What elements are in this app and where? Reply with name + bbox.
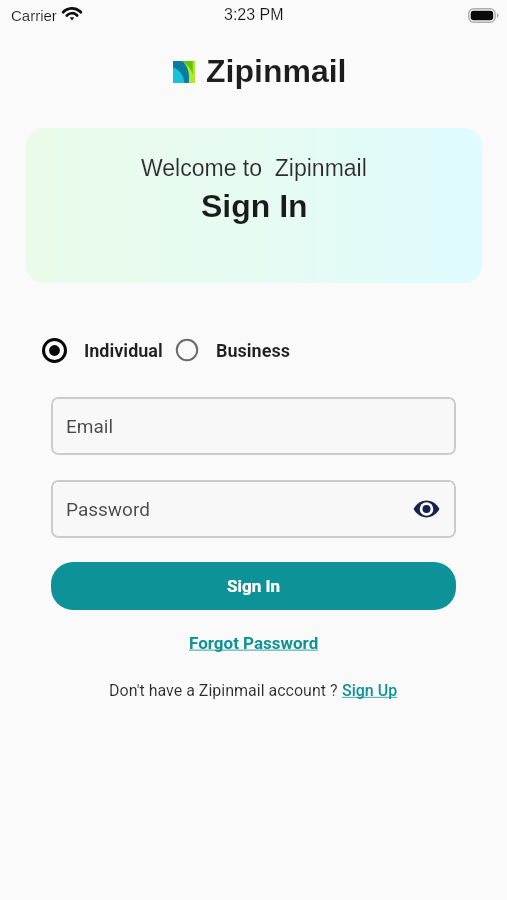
button[interactable]: Individual bbox=[41, 337, 163, 364]
button[interactable]: Sign In bbox=[51, 562, 456, 610]
button[interactable]: Email bbox=[51, 397, 456, 455]
staticText: Email bbox=[66, 415, 114, 437]
staticText: Welcome to Zipinmail bbox=[141, 155, 367, 181]
button[interactable]: Forgot Password bbox=[183, 630, 325, 656]
staticText: Carrier bbox=[11, 7, 57, 24]
staticText: 3:23 PM bbox=[224, 6, 284, 24]
staticText: Password bbox=[66, 498, 150, 520]
button[interactable]: Business bbox=[175, 338, 290, 362]
staticText: Forgot Password bbox=[189, 633, 319, 653]
staticText: Sign In bbox=[201, 188, 308, 224]
staticText: Zipinmail bbox=[206, 53, 347, 89]
staticText: Individual bbox=[84, 340, 163, 361]
button[interactable]: Sign Up bbox=[342, 681, 398, 700]
button[interactable]: Show password bbox=[412, 495, 440, 523]
staticText: Sign Up bbox=[342, 681, 398, 700]
staticText: Sign In bbox=[227, 576, 280, 596]
button[interactable]: Password bbox=[51, 480, 456, 538]
staticText: Don't have a Zipinmail account ? bbox=[109, 681, 342, 700]
staticText: Business bbox=[216, 340, 290, 361]
